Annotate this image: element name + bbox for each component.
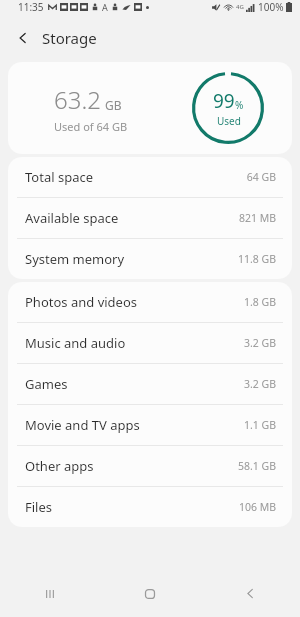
button[interactable]: Available space xyxy=(8,198,292,238)
staticText: 106 MB xyxy=(238,500,276,514)
staticText: Music and audio xyxy=(25,334,126,352)
staticText: 4G xyxy=(236,3,244,11)
staticText: Available space xyxy=(25,209,119,227)
button[interactable]: System memory xyxy=(8,239,292,279)
staticText: 100% xyxy=(258,0,284,14)
button[interactable]: Other apps xyxy=(8,446,292,486)
staticText: 58.1 GB xyxy=(237,459,276,473)
button[interactable]: Back xyxy=(200,570,300,617)
staticText: 63.2 xyxy=(54,83,101,116)
staticText: Movie and TV apps xyxy=(25,416,140,434)
staticText: 11:35 xyxy=(18,0,44,14)
staticText: % xyxy=(235,98,244,112)
staticText: System memory xyxy=(25,250,125,268)
staticText: Files xyxy=(25,498,53,516)
staticText: 1.8 GB xyxy=(243,295,276,309)
button[interactable]: Total space xyxy=(8,157,292,197)
staticText: 99 xyxy=(213,88,235,114)
staticText: 64 GB xyxy=(246,170,276,184)
staticText: Used of 64 GB xyxy=(54,119,128,134)
staticText: Other apps xyxy=(25,457,94,475)
staticText: Games xyxy=(25,375,68,393)
staticText: Used xyxy=(217,114,241,128)
button[interactable]: Photos and videos xyxy=(8,282,292,322)
staticText: Total space xyxy=(25,168,93,186)
staticText: 3.2 GB xyxy=(243,377,276,391)
button[interactable]: Games xyxy=(8,364,292,404)
staticText: 3.2 GB xyxy=(243,336,276,350)
staticText: Photos and videos xyxy=(25,293,138,311)
staticText: 11.8 GB xyxy=(237,252,276,266)
staticText: Storage xyxy=(42,28,97,48)
button[interactable]: Movie and TV apps xyxy=(8,405,292,445)
button[interactable]: Home xyxy=(100,570,200,617)
staticText: GB xyxy=(105,97,122,113)
staticText: 821 MB xyxy=(238,211,276,225)
button[interactable]: Back xyxy=(12,27,34,49)
button[interactable]: Recents xyxy=(0,570,100,617)
staticText: 1.1 GB xyxy=(243,418,276,432)
staticText: A xyxy=(102,1,108,13)
button[interactable]: Music and audio xyxy=(8,323,292,363)
button[interactable]: Files xyxy=(8,487,292,527)
